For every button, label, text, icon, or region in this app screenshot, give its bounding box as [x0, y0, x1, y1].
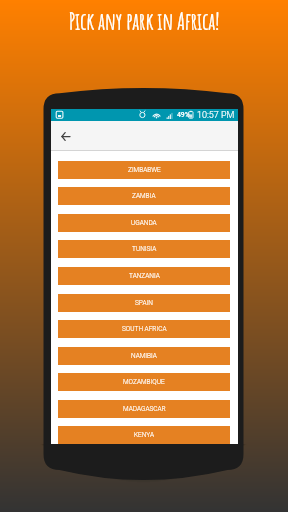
button[interactable]: KENYA	[58, 426, 230, 444]
button[interactable]: MADAGASCAR	[58, 400, 230, 418]
staticText: 49%	[177, 111, 190, 119]
staticText: ZAMBIA	[132, 192, 156, 200]
button[interactable]: MOZAMBIQUE	[58, 373, 230, 391]
button[interactable]: TANZANIA	[58, 267, 230, 285]
staticText: SPAIN	[135, 299, 153, 307]
button[interactable]: UGANDA	[58, 214, 230, 232]
staticText: TUNISIA	[132, 245, 157, 253]
button[interactable]: Back	[56, 127, 74, 145]
button[interactable]: TUNISIA	[58, 240, 230, 258]
staticText: ZIMBABWE	[128, 166, 161, 174]
button[interactable]: SPAIN	[58, 294, 230, 312]
staticText: NAMIBIA	[131, 352, 157, 360]
staticText: MADAGASCAR	[123, 405, 166, 413]
staticText: KENYA	[134, 431, 154, 439]
staticText: Pick any park in Africa!	[0, 6, 288, 36]
button[interactable]: NAMIBIA	[58, 347, 230, 365]
button[interactable]: ZIMBABWE	[58, 161, 230, 179]
staticText: UGANDA	[131, 219, 157, 227]
button[interactable]: ZAMBIA	[58, 187, 230, 205]
staticText: 10:57 PM	[197, 110, 235, 121]
staticText: MOZAMBIQUE	[123, 378, 165, 386]
button[interactable]: SOUTH AFRICA	[58, 320, 230, 338]
staticText: SOUTH AFRICA	[122, 325, 167, 333]
staticText: TANZANIA	[129, 272, 160, 280]
